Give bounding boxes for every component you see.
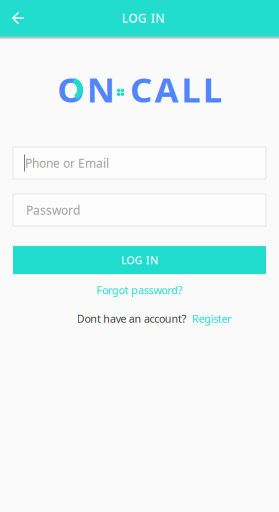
staticText: Phone or Email bbox=[25, 155, 109, 171]
button[interactable]: Register bbox=[192, 311, 231, 326]
staticText: LOG IN bbox=[122, 10, 164, 26]
button[interactable]: LOG IN bbox=[13, 246, 266, 274]
staticText: Forgot password? bbox=[96, 283, 183, 297]
staticText: Password bbox=[26, 202, 80, 218]
button[interactable]: Back bbox=[0, 0, 48, 36]
staticText: ON·CALL bbox=[57, 66, 222, 112]
staticText: Register bbox=[192, 311, 231, 326]
button[interactable]: Forgot password? bbox=[96, 284, 183, 296]
staticText: Dont have an account? bbox=[77, 311, 187, 326]
staticText: LOG IN bbox=[121, 253, 158, 267]
